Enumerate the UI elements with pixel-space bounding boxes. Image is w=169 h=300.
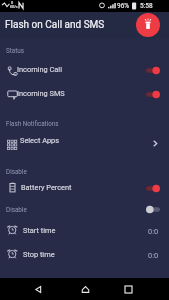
staticText: Flash on Call and SMS	[5, 19, 105, 31]
staticText: Disable	[6, 206, 27, 213]
button[interactable]: Toggle flashlight	[136, 13, 160, 37]
staticText: Stop time	[23, 250, 55, 259]
button[interactable]: Recent apps	[118, 279, 138, 299]
staticText: 0:0	[148, 251, 159, 260]
staticText: Disable	[6, 168, 27, 175]
staticText: 0	[11, 0, 14, 5]
staticText: Battery Percent	[21, 183, 72, 192]
button[interactable]: Disable	[0, 198, 169, 222]
button[interactable]: Back	[28, 279, 48, 299]
button[interactable]: Incoming SMS	[0, 82, 169, 106]
staticText: KB/s	[10, 5, 18, 9]
staticText: 0:0	[148, 227, 159, 236]
button[interactable]: Home	[75, 279, 95, 299]
button[interactable]: Start time	[0, 219, 169, 243]
staticText: Incoming Call	[17, 65, 62, 74]
staticText: Start time	[23, 226, 56, 235]
staticText: Incoming SMS	[17, 89, 65, 98]
button[interactable]: Stop time	[0, 243, 169, 267]
staticText: Flash Notifications	[6, 120, 59, 127]
button[interactable]: Battery Percent	[0, 176, 169, 200]
staticText: Status	[6, 47, 25, 54]
staticText: 5:58	[140, 2, 153, 10]
staticText: Select Apps	[20, 136, 60, 145]
button[interactable]: Select Apps	[0, 129, 169, 153]
staticText: 96%	[117, 2, 130, 10]
button[interactable]: Incoming Call	[0, 58, 169, 82]
